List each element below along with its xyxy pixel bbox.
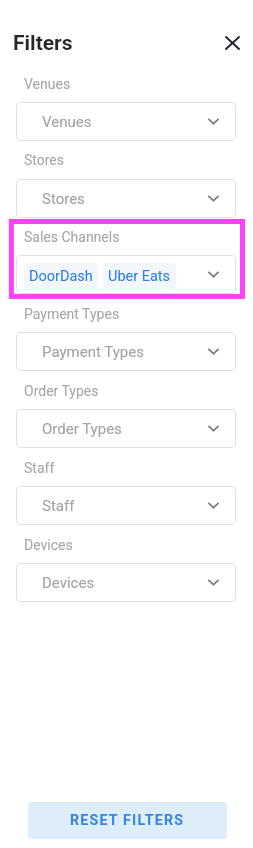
button[interactable]: Devices bbox=[16, 563, 236, 602]
staticText: Venues bbox=[42, 113, 92, 131]
staticText: RESET FILTERS bbox=[70, 812, 185, 829]
button[interactable]: DoorDash bbox=[24, 263, 98, 289]
button[interactable]: RESET FILTERS bbox=[28, 802, 227, 839]
staticText: Filters bbox=[13, 31, 73, 56]
staticText: Devices bbox=[24, 537, 73, 553]
button[interactable]: DoorDash bbox=[16, 255, 236, 294]
button[interactable]: Payment Types bbox=[16, 332, 236, 371]
staticText: Staff bbox=[24, 460, 55, 476]
button[interactable]: Staff bbox=[16, 486, 236, 525]
staticText: Order Types bbox=[24, 383, 99, 399]
button[interactable]: Uber Eats bbox=[103, 263, 176, 289]
staticText: Order Types bbox=[42, 420, 122, 438]
staticText: Devices bbox=[42, 574, 95, 592]
staticText: DoorDash bbox=[29, 268, 93, 285]
staticText: Payment Types bbox=[42, 343, 144, 361]
staticText: Staff bbox=[42, 497, 75, 515]
staticText: Stores bbox=[24, 152, 65, 168]
button[interactable]: Order Types bbox=[16, 409, 236, 448]
staticText: Stores bbox=[42, 190, 85, 208]
button[interactable]: Venues bbox=[16, 102, 236, 141]
staticText: Sales Channels bbox=[24, 229, 120, 245]
button[interactable]: Close bbox=[218, 28, 247, 57]
staticText: Venues bbox=[24, 76, 71, 92]
button[interactable]: Stores bbox=[16, 179, 236, 218]
staticText: Uber Eats bbox=[108, 268, 171, 285]
staticText: Payment Types bbox=[24, 306, 120, 322]
